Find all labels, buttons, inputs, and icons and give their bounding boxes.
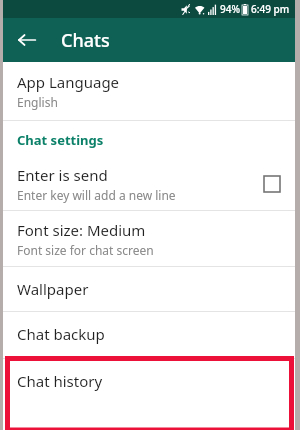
button[interactable]: Enter is send toggle bbox=[263, 175, 281, 193]
staticText: Font size for chat screen bbox=[17, 242, 154, 258]
button[interactable]: Chat backup bbox=[3, 312, 295, 356]
staticText: Wallpaper bbox=[17, 279, 89, 299]
staticText: Enter key will add a new line bbox=[17, 187, 176, 203]
button[interactable]: Back bbox=[11, 24, 43, 56]
button[interactable]: App Language bbox=[3, 62, 295, 120]
button[interactable]: Wallpaper bbox=[3, 267, 295, 311]
button[interactable]: Chat history bbox=[3, 359, 295, 403]
staticText: App Language bbox=[17, 72, 120, 92]
staticText: Font size: Medium bbox=[17, 220, 146, 240]
staticText: Chat backup bbox=[17, 324, 105, 344]
button[interactable]: Font size: Medium bbox=[3, 211, 295, 266]
staticText: 94% bbox=[220, 2, 240, 16]
staticText: English bbox=[17, 94, 58, 110]
staticText: Chats bbox=[61, 28, 110, 53]
staticText: Chat history bbox=[17, 371, 103, 391]
button[interactable]: Enter is send bbox=[3, 158, 295, 210]
staticText: 6:49 pm bbox=[251, 2, 290, 16]
staticText: Enter is send bbox=[17, 165, 108, 185]
staticText: Chat settings bbox=[17, 131, 104, 149]
